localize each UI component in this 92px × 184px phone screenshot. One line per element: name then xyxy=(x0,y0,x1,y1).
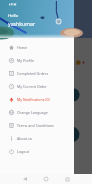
button[interactable]: Logout xyxy=(0,145,74,158)
staticText: About us xyxy=(17,136,33,141)
staticText: Terms and Conditions xyxy=(17,123,54,128)
staticText: Change Language xyxy=(17,110,48,115)
staticText: Hello xyxy=(8,13,19,19)
staticText: My Current Order xyxy=(17,84,47,89)
button[interactable]: Recent apps xyxy=(61,174,73,184)
staticText: Completed Orders xyxy=(17,71,49,76)
button[interactable]: Back xyxy=(19,174,31,184)
button[interactable]: About us xyxy=(0,132,74,145)
button[interactable]: Change Language xyxy=(0,106,74,119)
button[interactable]: My Current Order xyxy=(0,80,74,93)
button[interactable]: Completed Orders xyxy=(0,67,74,80)
staticText: Home xyxy=(17,45,28,50)
button[interactable]: My Notifications (0) xyxy=(0,93,74,106)
staticText: My Profile xyxy=(17,58,34,63)
staticText: Logout xyxy=(17,149,29,154)
button[interactable]: Terms and Conditions xyxy=(0,119,74,132)
staticText: My Notifications (0) xyxy=(17,97,50,102)
button[interactable]: Home xyxy=(0,41,74,54)
button[interactable]: Home xyxy=(40,174,52,184)
button[interactable]: My Profile xyxy=(0,54,74,67)
staticText: yashkumar xyxy=(8,20,36,27)
